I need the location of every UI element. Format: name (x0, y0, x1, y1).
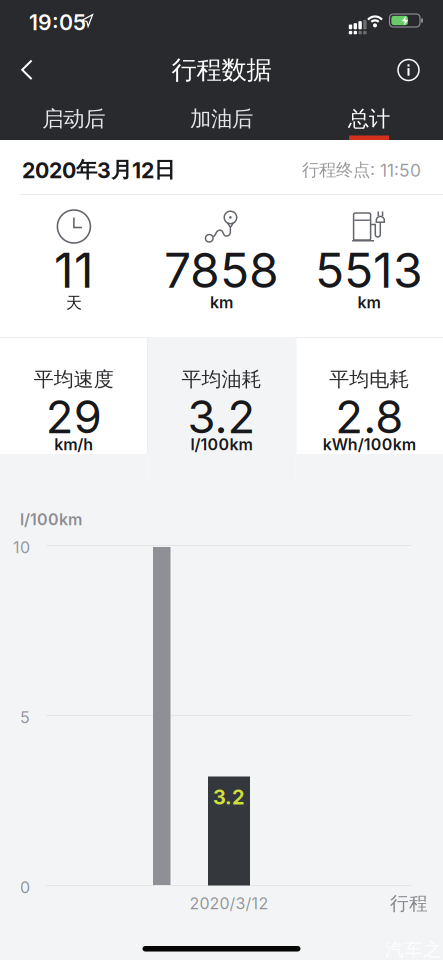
staticText: 3.2 (187, 390, 255, 443)
button[interactable]: Info (386, 44, 443, 96)
staticText: 行程数据 (171, 54, 271, 85)
button[interactable]: 总计 (295, 96, 443, 140)
staticText: 行程终点: 11:50 (302, 159, 421, 181)
button[interactable]: 加油后 (148, 96, 295, 140)
staticText: 19:05 (29, 10, 86, 35)
staticText: 加油后 (190, 106, 253, 132)
staticText: 10 (13, 538, 30, 557)
button[interactable]: 平均速度 (0, 337, 148, 480)
staticText: 2020/3/12 (189, 894, 268, 913)
staticText: 7858 (164, 242, 279, 299)
staticText: 3.2 (213, 785, 245, 809)
staticText: km (210, 293, 233, 312)
staticText: l/100km (190, 435, 252, 454)
button[interactable]: 平均油耗 (148, 337, 295, 480)
staticText: 5513 (315, 242, 423, 299)
button[interactable]: 平均电耗 (295, 337, 443, 480)
staticText: km/h (54, 435, 93, 454)
staticText: 平均油耗 (181, 367, 261, 392)
staticText: 2020年3月12日 (22, 157, 175, 183)
staticText: 5 (20, 708, 30, 727)
staticText: 0 (20, 878, 30, 897)
button[interactable]: 启动后 (0, 96, 148, 140)
staticText: 总计 (348, 106, 390, 132)
staticText: km (358, 293, 381, 312)
staticText: 行程 (390, 892, 428, 915)
staticText: 29 (46, 390, 102, 443)
staticText: kWh/100km (323, 435, 416, 454)
staticText: 平均速度 (34, 367, 114, 392)
staticText: l/100km (20, 510, 82, 529)
button[interactable]: Back (0, 44, 47, 96)
staticText: 2.8 (335, 390, 403, 443)
staticText: 平均电耗 (329, 367, 409, 392)
staticText: 11 (54, 242, 94, 299)
staticText: 汽车之家 (385, 938, 443, 960)
staticText: 天 (66, 293, 82, 313)
staticText: 启动后 (42, 106, 105, 132)
